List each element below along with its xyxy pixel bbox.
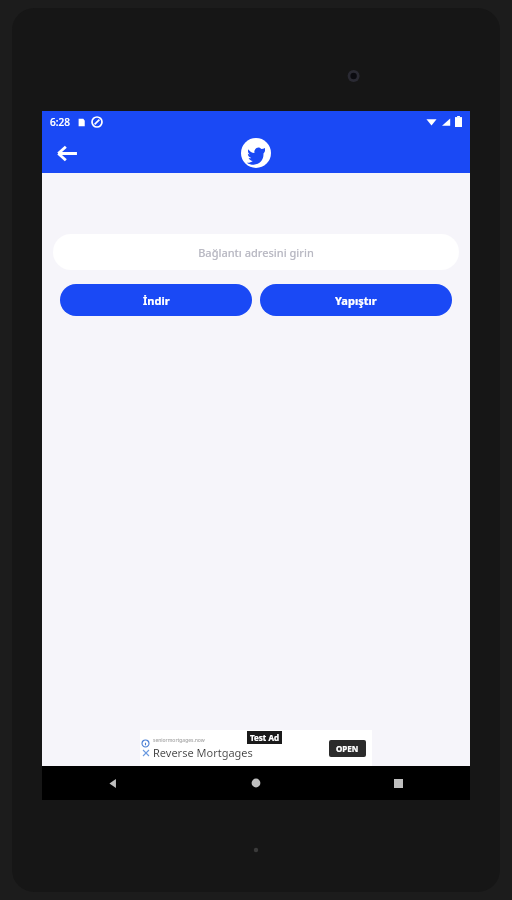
button[interactable]: Twitter <box>241 138 271 168</box>
staticText: Bağlantı adresini girin <box>198 245 314 260</box>
button[interactable]: Recent apps <box>327 766 470 800</box>
staticText: 6:28 <box>50 115 70 129</box>
button[interactable]: Home <box>184 766 327 800</box>
staticText: İndir <box>143 293 170 308</box>
staticText: seniormortgages.now <box>153 737 205 744</box>
button[interactable]: Advertisement <box>140 730 372 766</box>
button[interactable]: Yapıştır <box>260 284 452 316</box>
staticText: Test Ad <box>250 732 279 743</box>
button[interactable]: OPEN <box>329 740 366 757</box>
button[interactable]: Back <box>42 766 184 800</box>
staticText: Yapıştır <box>335 293 377 308</box>
button[interactable]: Bağlantı adresini girin <box>53 234 459 270</box>
staticText: Reverse Mortgages <box>153 745 253 760</box>
button[interactable]: İndir <box>60 284 252 316</box>
staticText: OPEN <box>336 743 359 754</box>
button[interactable]: Back <box>48 134 86 172</box>
